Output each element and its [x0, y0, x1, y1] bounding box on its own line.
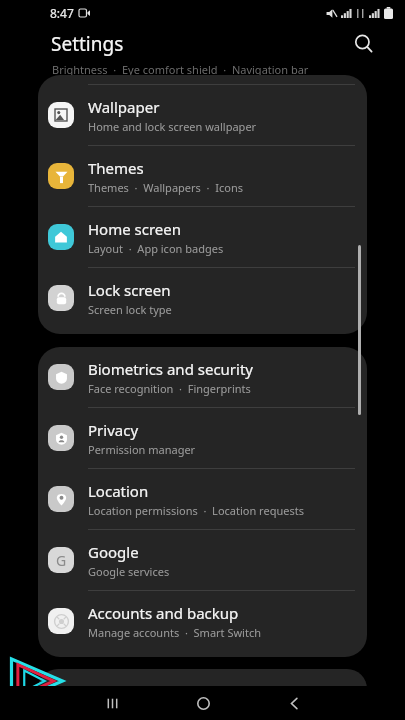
button[interactable]: Back: [274, 686, 314, 720]
staticText: Brightness · Eye comfort shield · Naviga…: [52, 62, 309, 75]
staticText: Home screen: [88, 219, 182, 239]
staticText: Biometrics and security: [88, 359, 254, 379]
button[interactable]: Location: [38, 469, 367, 529]
staticText: G: [56, 551, 67, 570]
button[interactable]: Themes: [38, 146, 367, 206]
button[interactable]: Privacy: [38, 408, 367, 468]
staticText: Manage accounts · Smart Switch: [88, 625, 261, 640]
staticText: Permission manager: [88, 442, 196, 457]
staticText: Face recognition · Fingerprints: [88, 381, 251, 396]
other: App logo: [8, 652, 66, 710]
staticText: Location permissions · Location requests: [88, 503, 304, 518]
staticText: Google services: [88, 564, 170, 579]
staticText: 8:47: [50, 5, 74, 21]
staticText: Lock screen: [88, 280, 171, 300]
staticText: Settings: [51, 31, 124, 57]
staticText: Location: [88, 481, 149, 501]
staticText: Layout · App icon badges: [88, 241, 224, 256]
staticText: Screen lock type: [88, 302, 172, 317]
button[interactable]: Lock screen: [38, 268, 367, 328]
button[interactable]: Home screen: [38, 207, 367, 267]
button[interactable]: Search: [347, 27, 381, 61]
button[interactable]: Recent apps: [92, 686, 132, 720]
button[interactable]: Wallpaper: [38, 85, 367, 145]
staticText: Themes · Wallpapers · Icons: [88, 180, 243, 195]
button[interactable]: Biometrics and security: [38, 347, 367, 407]
button[interactable]: Home: [183, 686, 223, 720]
button[interactable]: G: [38, 530, 367, 590]
button[interactable]: Accounts and backup: [38, 591, 367, 651]
staticText: Accounts and backup: [88, 603, 239, 623]
staticText: Themes: [88, 158, 144, 178]
staticText: Home and lock screen wallpaper: [88, 119, 257, 134]
staticText: Wallpaper: [88, 97, 160, 117]
staticText: Privacy: [88, 420, 139, 440]
staticText: Google: [88, 542, 139, 562]
